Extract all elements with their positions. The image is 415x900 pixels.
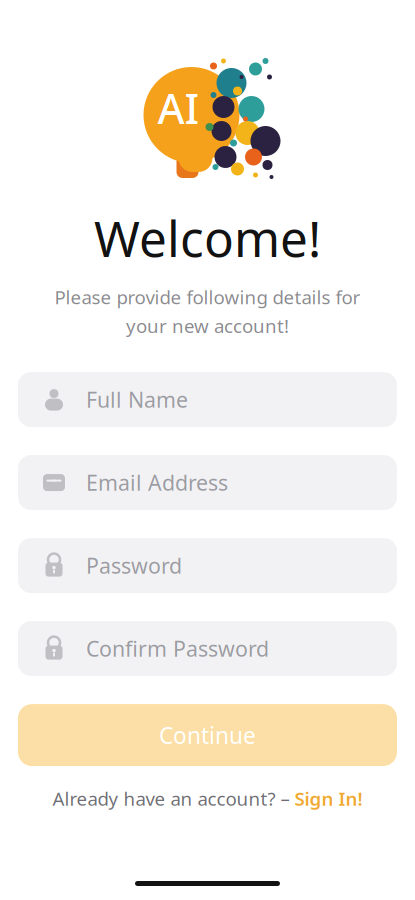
staticText: Please provide following details for [54, 284, 360, 309]
button[interactable]: Continue [18, 704, 397, 766]
staticText: Password [86, 551, 182, 580]
button[interactable]: Password [18, 538, 397, 593]
staticText: AI [157, 81, 199, 135]
button[interactable]: Email Address [18, 455, 397, 510]
staticText: Sign In! [294, 786, 362, 811]
staticText: Welcome! [94, 205, 321, 270]
staticText: Email Address [86, 468, 228, 497]
staticText: your new account! [126, 313, 289, 338]
staticText: Continue [159, 720, 256, 750]
staticText: Full Name [86, 385, 188, 414]
staticText: Confirm Password [86, 634, 269, 663]
staticText: Already have an account? – [52, 786, 289, 811]
button[interactable]: Confirm Password [18, 621, 397, 676]
button[interactable]: Full Name [18, 372, 397, 427]
button[interactable]: Already have an account? – [42, 780, 372, 817]
